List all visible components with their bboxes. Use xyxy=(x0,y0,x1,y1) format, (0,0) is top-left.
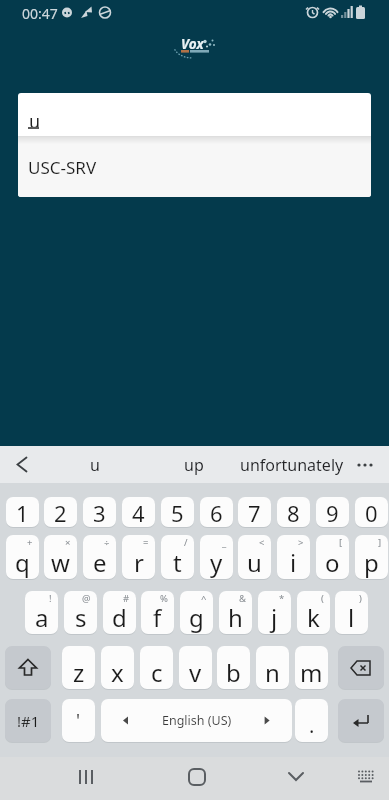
button[interactable]: !#1 xyxy=(5,699,51,742)
button[interactable]: ' xyxy=(62,699,95,742)
staticText: Vox xyxy=(181,35,204,53)
staticText: x xyxy=(111,656,124,689)
staticText: > xyxy=(298,536,304,549)
button[interactable]: w xyxy=(44,535,77,579)
staticText: l xyxy=(348,601,355,634)
button[interactable]: g xyxy=(180,591,213,634)
button[interactable] xyxy=(338,646,384,689)
staticText: 0 xyxy=(365,498,378,527)
staticText: n xyxy=(265,656,280,689)
button[interactable]: USC-SRV xyxy=(18,137,371,197)
button[interactable]: q xyxy=(6,535,39,579)
button[interactable] xyxy=(350,762,382,794)
staticText: . xyxy=(309,712,315,739)
button[interactable]: u xyxy=(35,446,155,483)
staticText: + xyxy=(27,536,33,549)
button[interactable]: x xyxy=(101,646,134,689)
staticText: % xyxy=(160,592,168,605)
button[interactable]: o xyxy=(316,535,349,579)
button[interactable]: 4 xyxy=(122,497,155,527)
button[interactable] xyxy=(180,762,212,794)
button[interactable]: e xyxy=(83,535,116,579)
staticText: # xyxy=(123,592,130,605)
staticText: 4 xyxy=(132,498,145,527)
staticText: u xyxy=(29,109,41,134)
staticText: k xyxy=(307,601,320,634)
staticText: 9 xyxy=(326,498,339,527)
button[interactable]: l xyxy=(335,591,368,634)
button[interactable] xyxy=(338,699,384,742)
button[interactable]: a xyxy=(25,591,58,634)
staticText: d xyxy=(112,601,127,634)
staticText: s xyxy=(75,601,87,634)
button[interactable]: 8 xyxy=(277,497,310,527)
button[interactable]: r xyxy=(122,535,155,579)
staticText: o xyxy=(325,546,340,579)
button[interactable]: s xyxy=(64,591,97,634)
button[interactable]: f xyxy=(141,591,174,634)
staticText: t xyxy=(173,546,182,579)
button[interactable]: k xyxy=(297,591,330,634)
button[interactable]: b xyxy=(217,646,250,689)
staticText: u xyxy=(90,454,100,476)
staticText: i xyxy=(290,546,297,579)
staticText: ] xyxy=(378,536,382,549)
button[interactable]: p xyxy=(355,535,388,579)
button[interactable]: m xyxy=(295,646,328,689)
staticText: 2 xyxy=(54,498,67,527)
staticText: e xyxy=(93,546,107,579)
staticText: ) xyxy=(359,592,362,605)
button[interactable]: n xyxy=(256,646,289,689)
staticText: unfortunately xyxy=(240,454,344,476)
button[interactable]: u xyxy=(238,535,271,579)
staticText: w xyxy=(51,546,70,579)
staticText: 1 xyxy=(16,498,29,527)
staticText: * xyxy=(279,592,285,605)
button[interactable]: 6 xyxy=(200,497,233,527)
button[interactable]: up xyxy=(134,446,254,483)
button[interactable] xyxy=(70,762,102,794)
button[interactable]: y xyxy=(200,535,233,579)
button[interactable] xyxy=(0,446,60,483)
staticText: ! xyxy=(49,592,52,605)
button[interactable]: 2 xyxy=(44,497,77,527)
staticText: [ xyxy=(339,536,343,549)
button[interactable]: i xyxy=(277,535,310,579)
button[interactable]: u xyxy=(29,109,41,134)
staticText: v xyxy=(189,656,202,689)
button[interactable]: English (US) xyxy=(101,699,292,742)
button[interactable]: 3 xyxy=(83,497,116,527)
staticText: m xyxy=(300,656,323,689)
button[interactable] xyxy=(5,646,51,689)
staticText: = xyxy=(143,536,149,549)
button[interactable] xyxy=(282,762,314,794)
button[interactable]: c xyxy=(140,646,173,689)
staticText: q xyxy=(15,546,30,579)
button[interactable]: . xyxy=(295,699,328,742)
button[interactable]: 1 xyxy=(6,497,39,527)
button[interactable]: 5 xyxy=(161,497,194,527)
button[interactable]: 0 xyxy=(355,497,388,527)
staticText: / xyxy=(184,536,188,549)
staticText: English (US) xyxy=(162,712,232,729)
staticText: g xyxy=(189,601,204,634)
staticText: y xyxy=(210,546,223,579)
staticText: & xyxy=(239,592,246,605)
staticText: ÷ xyxy=(104,536,110,549)
button[interactable]: h xyxy=(219,591,252,634)
button[interactable]: j xyxy=(258,591,291,634)
button[interactable]: unfortunately xyxy=(232,446,352,483)
staticText: @ xyxy=(82,592,91,605)
staticText: r xyxy=(134,546,144,579)
button[interactable]: t xyxy=(161,535,194,579)
button[interactable]: d xyxy=(103,591,136,634)
staticText: _ xyxy=(222,536,227,549)
staticText: 8 xyxy=(287,498,300,527)
button[interactable]: 7 xyxy=(238,497,271,527)
button[interactable]: z xyxy=(62,646,95,689)
staticText: 7 xyxy=(248,498,261,527)
button[interactable]: 9 xyxy=(316,497,349,527)
button[interactable]: v xyxy=(179,646,212,689)
staticText: f xyxy=(153,601,162,634)
staticText: ' xyxy=(76,708,81,733)
